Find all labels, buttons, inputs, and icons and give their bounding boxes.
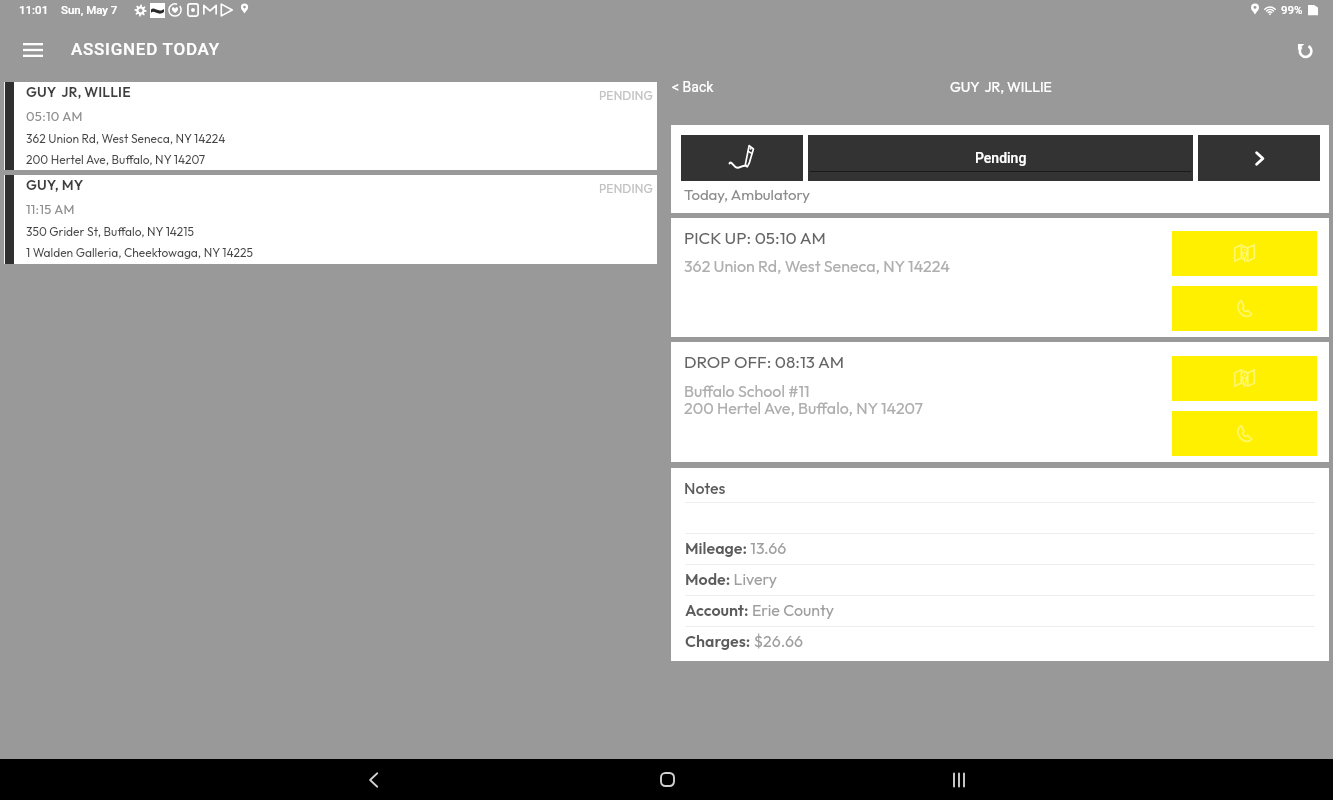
staticText: 350 Grider St, Buffalo, NY 14215	[26, 224, 195, 239]
staticText: PENDING	[599, 88, 653, 103]
button[interactable]: Call	[1172, 411, 1317, 456]
staticText: 362 Union Rd, West Seneca, NY 14224	[684, 256, 950, 276]
button[interactable]: Open in maps	[1172, 356, 1317, 401]
staticText: 11:15 AM	[26, 201, 75, 217]
staticText: GUY JR, WILLIE	[950, 78, 1052, 96]
button[interactable]: Call	[1172, 286, 1317, 331]
staticText: 362 Union Rd, West Seneca, NY 14224	[26, 131, 226, 146]
button[interactable]: Pending	[808, 135, 1193, 181]
staticText: Buffalo School #11	[684, 381, 810, 401]
staticText: PICK UP: 05:10 AM	[684, 227, 826, 248]
staticText: ASSIGNED TODAY	[71, 39, 220, 59]
staticText: GUY, MY	[26, 176, 84, 194]
button[interactable]: GUY, MY	[4, 175, 657, 264]
button[interactable]: Back	[345, 759, 401, 800]
button[interactable]: GUY JR, WILLIE	[4, 82, 657, 170]
button[interactable]: < Back	[663, 74, 723, 100]
staticText: 1 Walden Galleria, Cheektowaga, NY 14225	[26, 245, 253, 260]
button[interactable]: Next stop	[1198, 135, 1320, 181]
staticText: PENDING	[599, 181, 653, 196]
staticText: Mileage: 13.66	[685, 538, 787, 558]
staticText: 200 Hertel Ave, Buffalo, NY 14207	[684, 398, 923, 418]
staticText: 11:01	[19, 3, 49, 16]
staticText: Account: Erie County	[685, 600, 835, 620]
button[interactable]: Capture signature	[681, 135, 803, 181]
button[interactable]: Refresh	[1282, 28, 1326, 72]
staticText: Sun, May 7	[61, 3, 118, 16]
staticText: GUY JR, WILLIE	[26, 83, 131, 101]
staticText: Charges: $26.66	[685, 631, 803, 651]
staticText: Pending	[975, 150, 1027, 166]
staticText: 200 Hertel Ave, Buffalo, NY 14207	[26, 152, 206, 167]
staticText: < Back	[672, 79, 714, 95]
staticText: 99%	[1281, 3, 1303, 16]
button[interactable]: Home	[639, 759, 695, 800]
button[interactable]: Open in maps	[1172, 231, 1317, 276]
button[interactable]: Open navigation menu	[11, 28, 55, 72]
button[interactable]: Recent apps	[931, 759, 987, 800]
staticText: Notes	[684, 478, 726, 498]
staticText: 05:10 AM	[26, 108, 83, 124]
staticText: Mode: Livery	[685, 569, 777, 589]
staticText: DROP OFF: 08:13 AM	[684, 351, 844, 372]
staticText: Today, Ambulatory	[684, 185, 811, 204]
